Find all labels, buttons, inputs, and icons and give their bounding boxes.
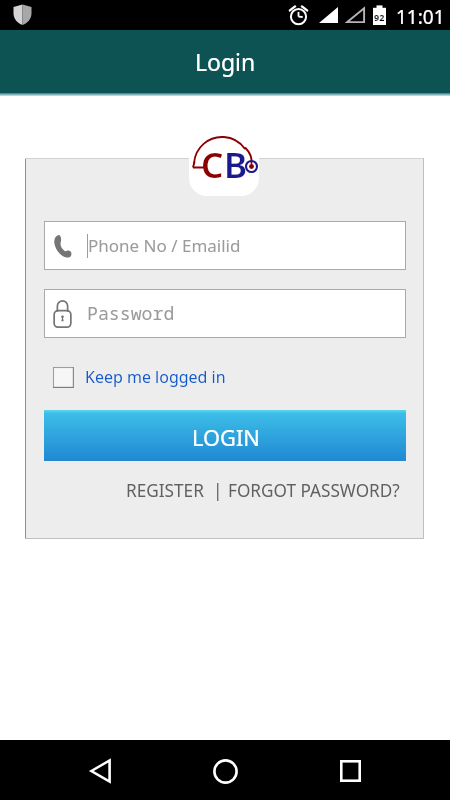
button[interactable]: Phone No / Emailid <box>52 221 406 270</box>
button[interactable]: Keep me logged in <box>53 366 226 388</box>
staticText: FORGOT PASSWORD? <box>228 479 400 502</box>
staticText: | <box>213 479 223 502</box>
staticText: 11:01 <box>396 4 445 30</box>
staticText: 92 <box>374 11 385 23</box>
staticText: Login <box>195 46 256 77</box>
staticText: Phone No / Emailid <box>88 234 241 257</box>
button[interactable]: Back <box>72 743 128 799</box>
button[interactable]: REGISTER <box>126 477 204 504</box>
staticText: Keep me logged in <box>85 366 226 388</box>
button[interactable]: Recents <box>322 743 378 799</box>
button[interactable]: LOGIN <box>44 410 406 461</box>
staticText: REGISTER <box>126 479 204 502</box>
staticText: C <box>201 141 224 189</box>
button[interactable]: Password <box>52 289 406 338</box>
staticText: B <box>224 141 248 189</box>
staticText: LOGIN <box>192 423 260 453</box>
button[interactable]: FORGOT PASSWORD? <box>228 477 400 504</box>
button[interactable]: Home <box>197 743 253 799</box>
staticText: Password <box>87 301 175 326</box>
